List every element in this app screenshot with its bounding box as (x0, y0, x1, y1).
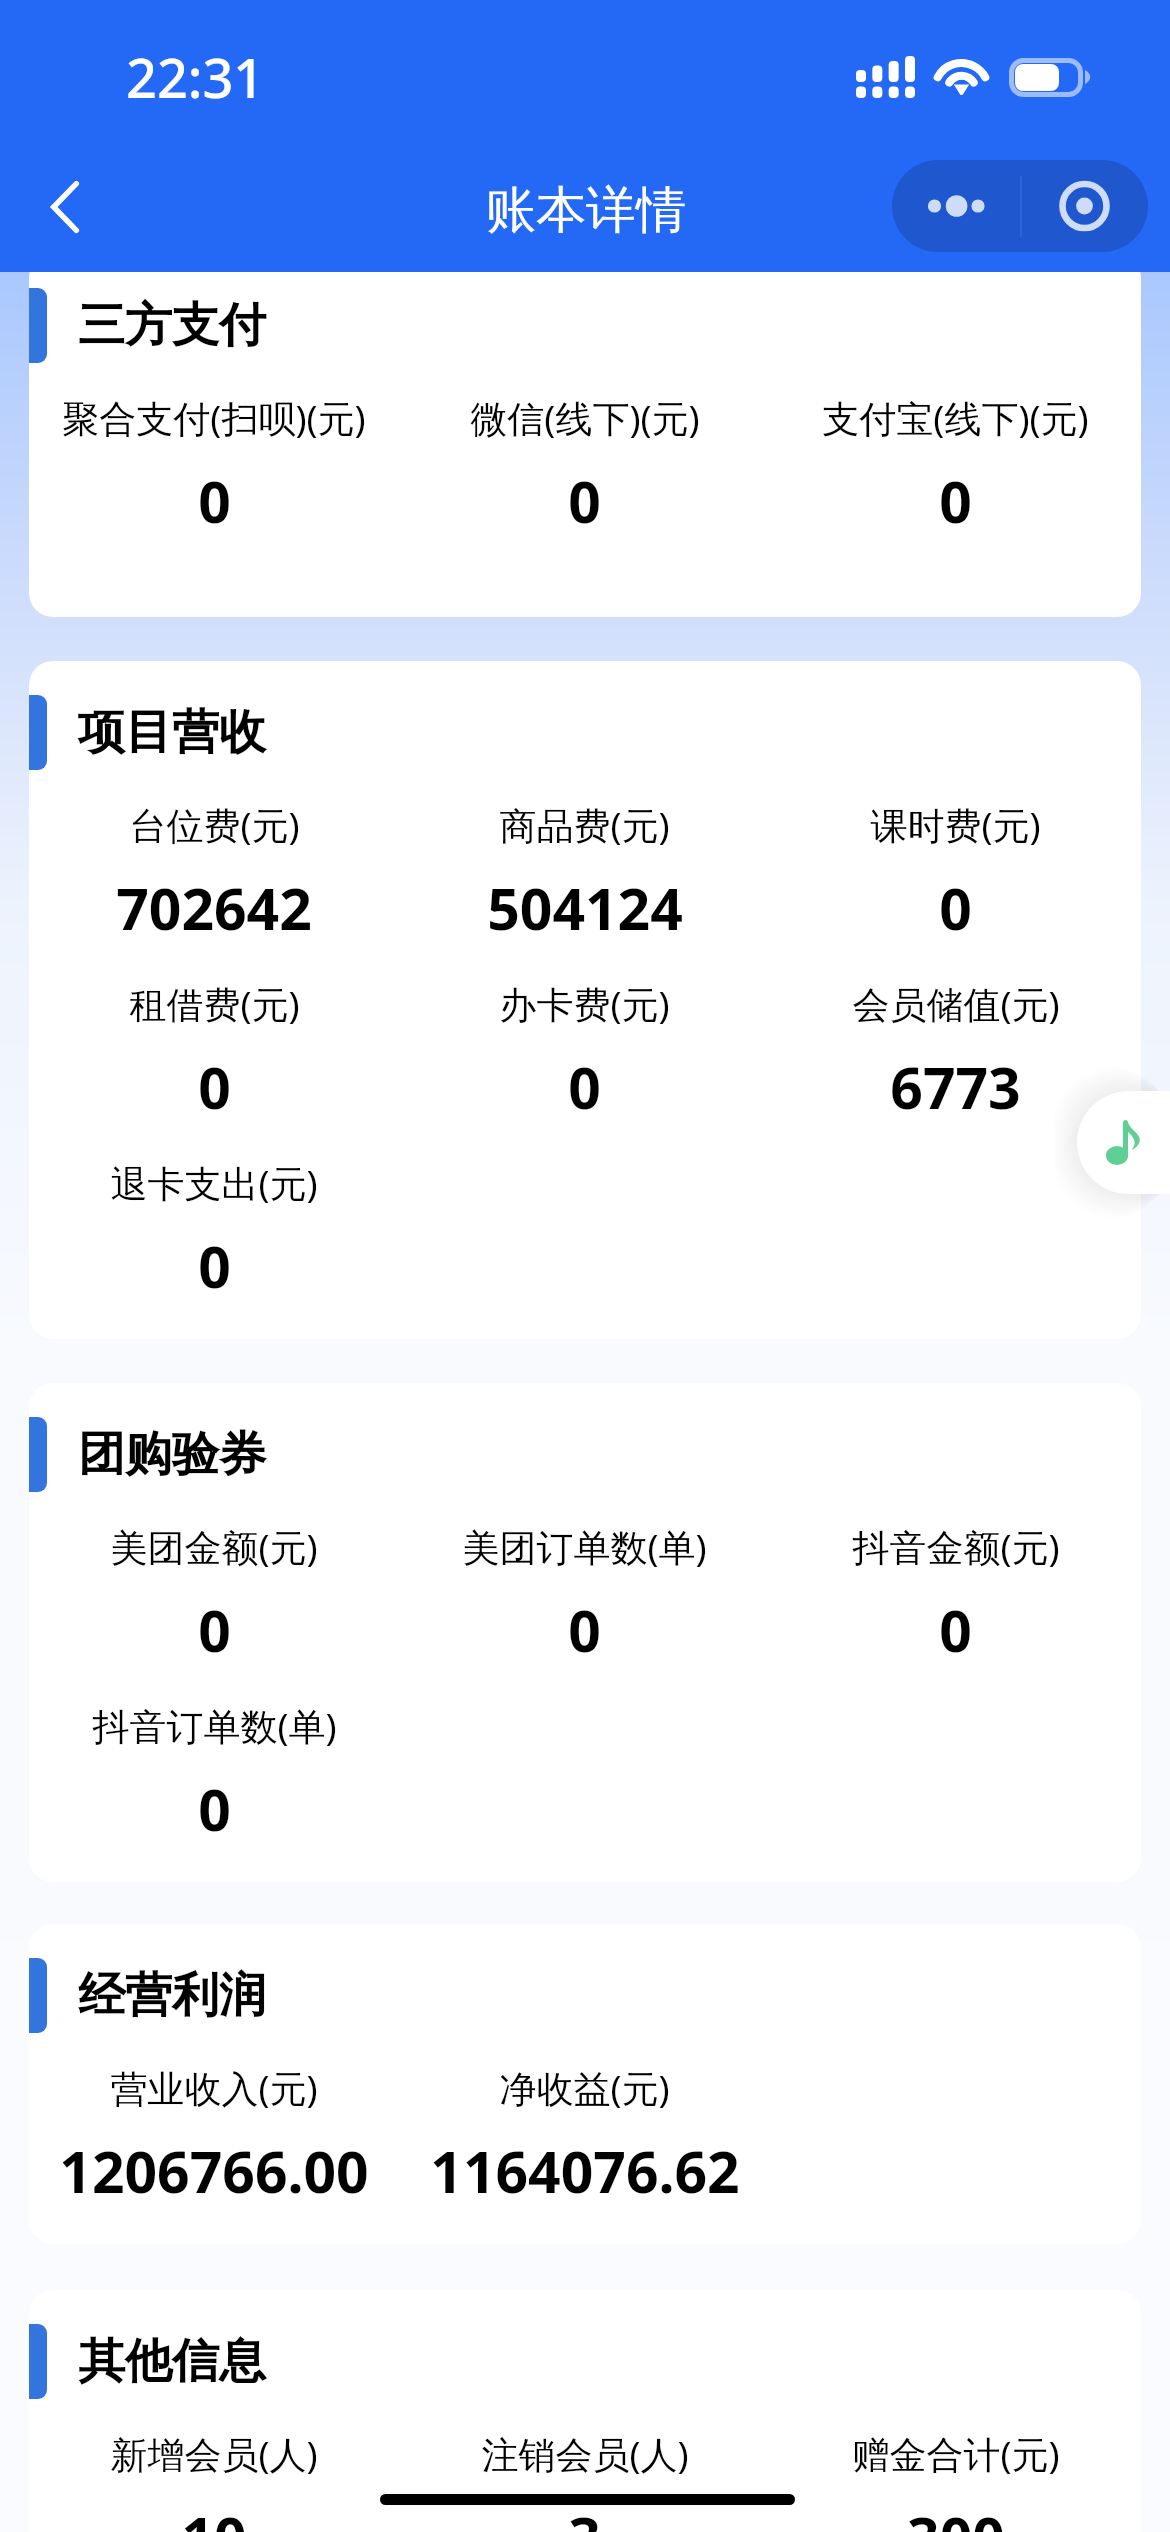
staticText: 0 (568, 462, 601, 540)
staticText: 6773 (890, 1048, 1021, 1126)
staticText: 22:31 (126, 40, 265, 114)
staticText: 其他信息 (78, 2332, 266, 2391)
staticText: 0 (568, 1591, 601, 1669)
staticText: 经营利润 (78, 1966, 266, 2025)
staticText: 0 (198, 462, 231, 540)
staticText: 账本详情 (486, 179, 686, 242)
staticText: 0 (939, 869, 972, 947)
staticText: 商品费(元) (499, 799, 670, 850)
staticText: 抖音订单数(单) (92, 1700, 337, 1751)
staticText: 支付宝(线下)(元) (822, 392, 1089, 443)
staticText: 租借费(元) (129, 978, 300, 1029)
staticText: 702642 (116, 869, 312, 947)
staticText: 净收益(元) (499, 2062, 670, 2113)
staticText: 0 (198, 1591, 231, 1669)
staticText: 课时费(元) (870, 799, 1041, 850)
staticText: 1206766.00 (59, 2132, 369, 2210)
staticText: 0 (939, 462, 972, 540)
staticText: 赠金合计(元) (852, 2428, 1060, 2479)
staticText: 0 (198, 1770, 231, 1848)
staticText: 1164076.62 (430, 2132, 740, 2210)
staticText: 新增会员(人) (110, 2428, 318, 2479)
staticText: 美团订单数(单) (462, 1521, 707, 1572)
staticText: 504124 (487, 869, 683, 947)
staticText: 300 (907, 2498, 1005, 2532)
staticText: 0 (198, 1048, 231, 1126)
staticText: 10 (181, 2498, 247, 2532)
staticText: 营业收入(元) (110, 2062, 318, 2113)
staticText: 0 (568, 1048, 601, 1126)
staticText: 办卡费(元) (499, 978, 670, 1029)
staticText: 美团金额(元) (110, 1521, 318, 1572)
staticText: 台位费(元) (129, 799, 300, 850)
staticText: 项目营收 (78, 703, 266, 762)
staticText: 0 (198, 1227, 231, 1305)
staticText: 会员储值(元) (852, 978, 1060, 1029)
button[interactable]: Close mini program (1022, 160, 1148, 252)
staticText: 退卡支出(元) (110, 1157, 318, 1208)
staticText: 0 (939, 1591, 972, 1669)
staticText: 注销会员(人) (481, 2428, 689, 2479)
staticText: 三方支付 (78, 296, 266, 355)
staticText: 微信(线下)(元) (470, 392, 700, 443)
button[interactable]: Back (20, 162, 110, 252)
button[interactable]: Music (1077, 1091, 1170, 1194)
staticText: 3 (568, 2498, 601, 2532)
staticText: 团购验券 (78, 1425, 266, 1484)
button[interactable]: More options (892, 160, 1020, 252)
staticText: 聚合支付(扫呗)(元) (62, 392, 366, 443)
staticText: 抖音金额(元) (852, 1521, 1060, 1572)
